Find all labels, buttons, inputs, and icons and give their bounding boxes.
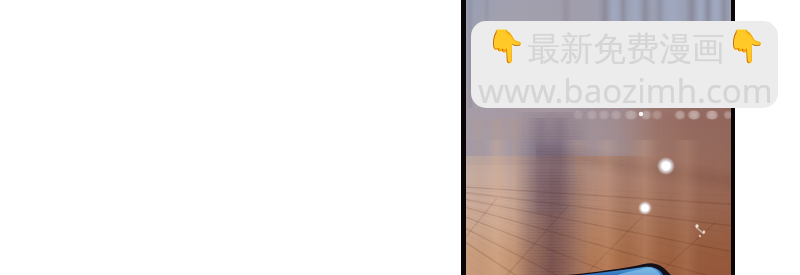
staticText: 👇 xyxy=(486,27,526,65)
staticText: 最新免费漫画 xyxy=(527,28,725,70)
button[interactable]: 👇 xyxy=(471,21,778,108)
staticText: www.baozimh.com xyxy=(478,68,773,108)
staticText: 👇 xyxy=(726,27,766,65)
